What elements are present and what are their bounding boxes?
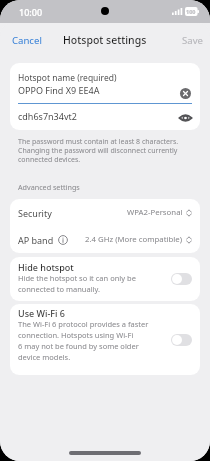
staticText: Hide the hotspot so it can only be conne…	[18, 273, 136, 294]
staticText: Security	[18, 207, 127, 219]
staticText: Hide hotspot	[18, 261, 74, 273]
staticText: Hotspot name (required)	[18, 72, 117, 84]
staticText: AP band	[18, 234, 54, 246]
button[interactable]: Toggle	[171, 273, 192, 285]
button[interactable]: Toggle	[171, 334, 192, 346]
button[interactable]: Clear hotspot name	[177, 85, 193, 101]
button[interactable]: Show password	[177, 110, 193, 126]
button[interactable]: Cancel	[12, 34, 42, 47]
staticText: The password must contain at least 8 cha…	[18, 137, 179, 164]
staticText: 100	[186, 8, 196, 15]
button[interactable]: Hide hotspot	[10, 257, 200, 301]
staticText: cdh6s7n34vt2	[18, 110, 77, 122]
staticText: OPPO Find X9 EE4A	[18, 84, 100, 96]
staticText: 10:00	[19, 6, 43, 18]
staticText: Advanced settings	[18, 182, 80, 192]
button[interactable]: Use Wi-Fi 6	[10, 304, 200, 375]
staticText: Hotspot settings	[63, 33, 147, 47]
button[interactable]: Security	[10, 199, 200, 226]
staticText: WPA2-Personal	[127, 207, 183, 218]
button[interactable]: Save	[182, 34, 203, 47]
staticText: Use Wi-Fi 6	[18, 307, 65, 319]
button[interactable]: AP band	[10, 226, 200, 253]
staticText: 2.4 GHz (More compatible)	[85, 234, 183, 245]
staticText: The Wi-Fi 6 protocol provides a faster c…	[18, 319, 149, 362]
button[interactable]: More info about AP band	[58, 235, 68, 245]
